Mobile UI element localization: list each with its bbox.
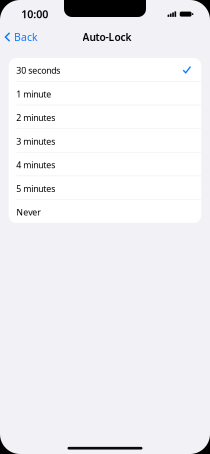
button[interactable]: 30 seconds	[9, 58, 201, 82]
staticText: 1 minute	[16, 88, 51, 100]
staticText: 3 minutes	[16, 135, 55, 147]
button[interactable]: 4 minutes	[9, 152, 201, 176]
button[interactable]: 3 minutes	[9, 129, 201, 152]
button[interactable]: 2 minutes	[9, 105, 201, 129]
staticText: 2 minutes	[16, 112, 55, 124]
button[interactable]: 5 minutes	[9, 176, 201, 200]
staticText: Never	[16, 206, 41, 218]
button[interactable]: 1 minute	[9, 82, 201, 105]
staticText: 4 minutes	[16, 159, 55, 171]
staticText: Auto-Lock	[82, 30, 131, 44]
staticText: 5 minutes	[16, 182, 55, 194]
staticText: 10:00	[21, 7, 48, 21]
staticText: Back	[14, 30, 38, 44]
button[interactable]: Back	[0, 26, 44, 48]
staticText: 30 seconds	[16, 64, 60, 76]
button[interactable]: Never	[9, 200, 201, 223]
